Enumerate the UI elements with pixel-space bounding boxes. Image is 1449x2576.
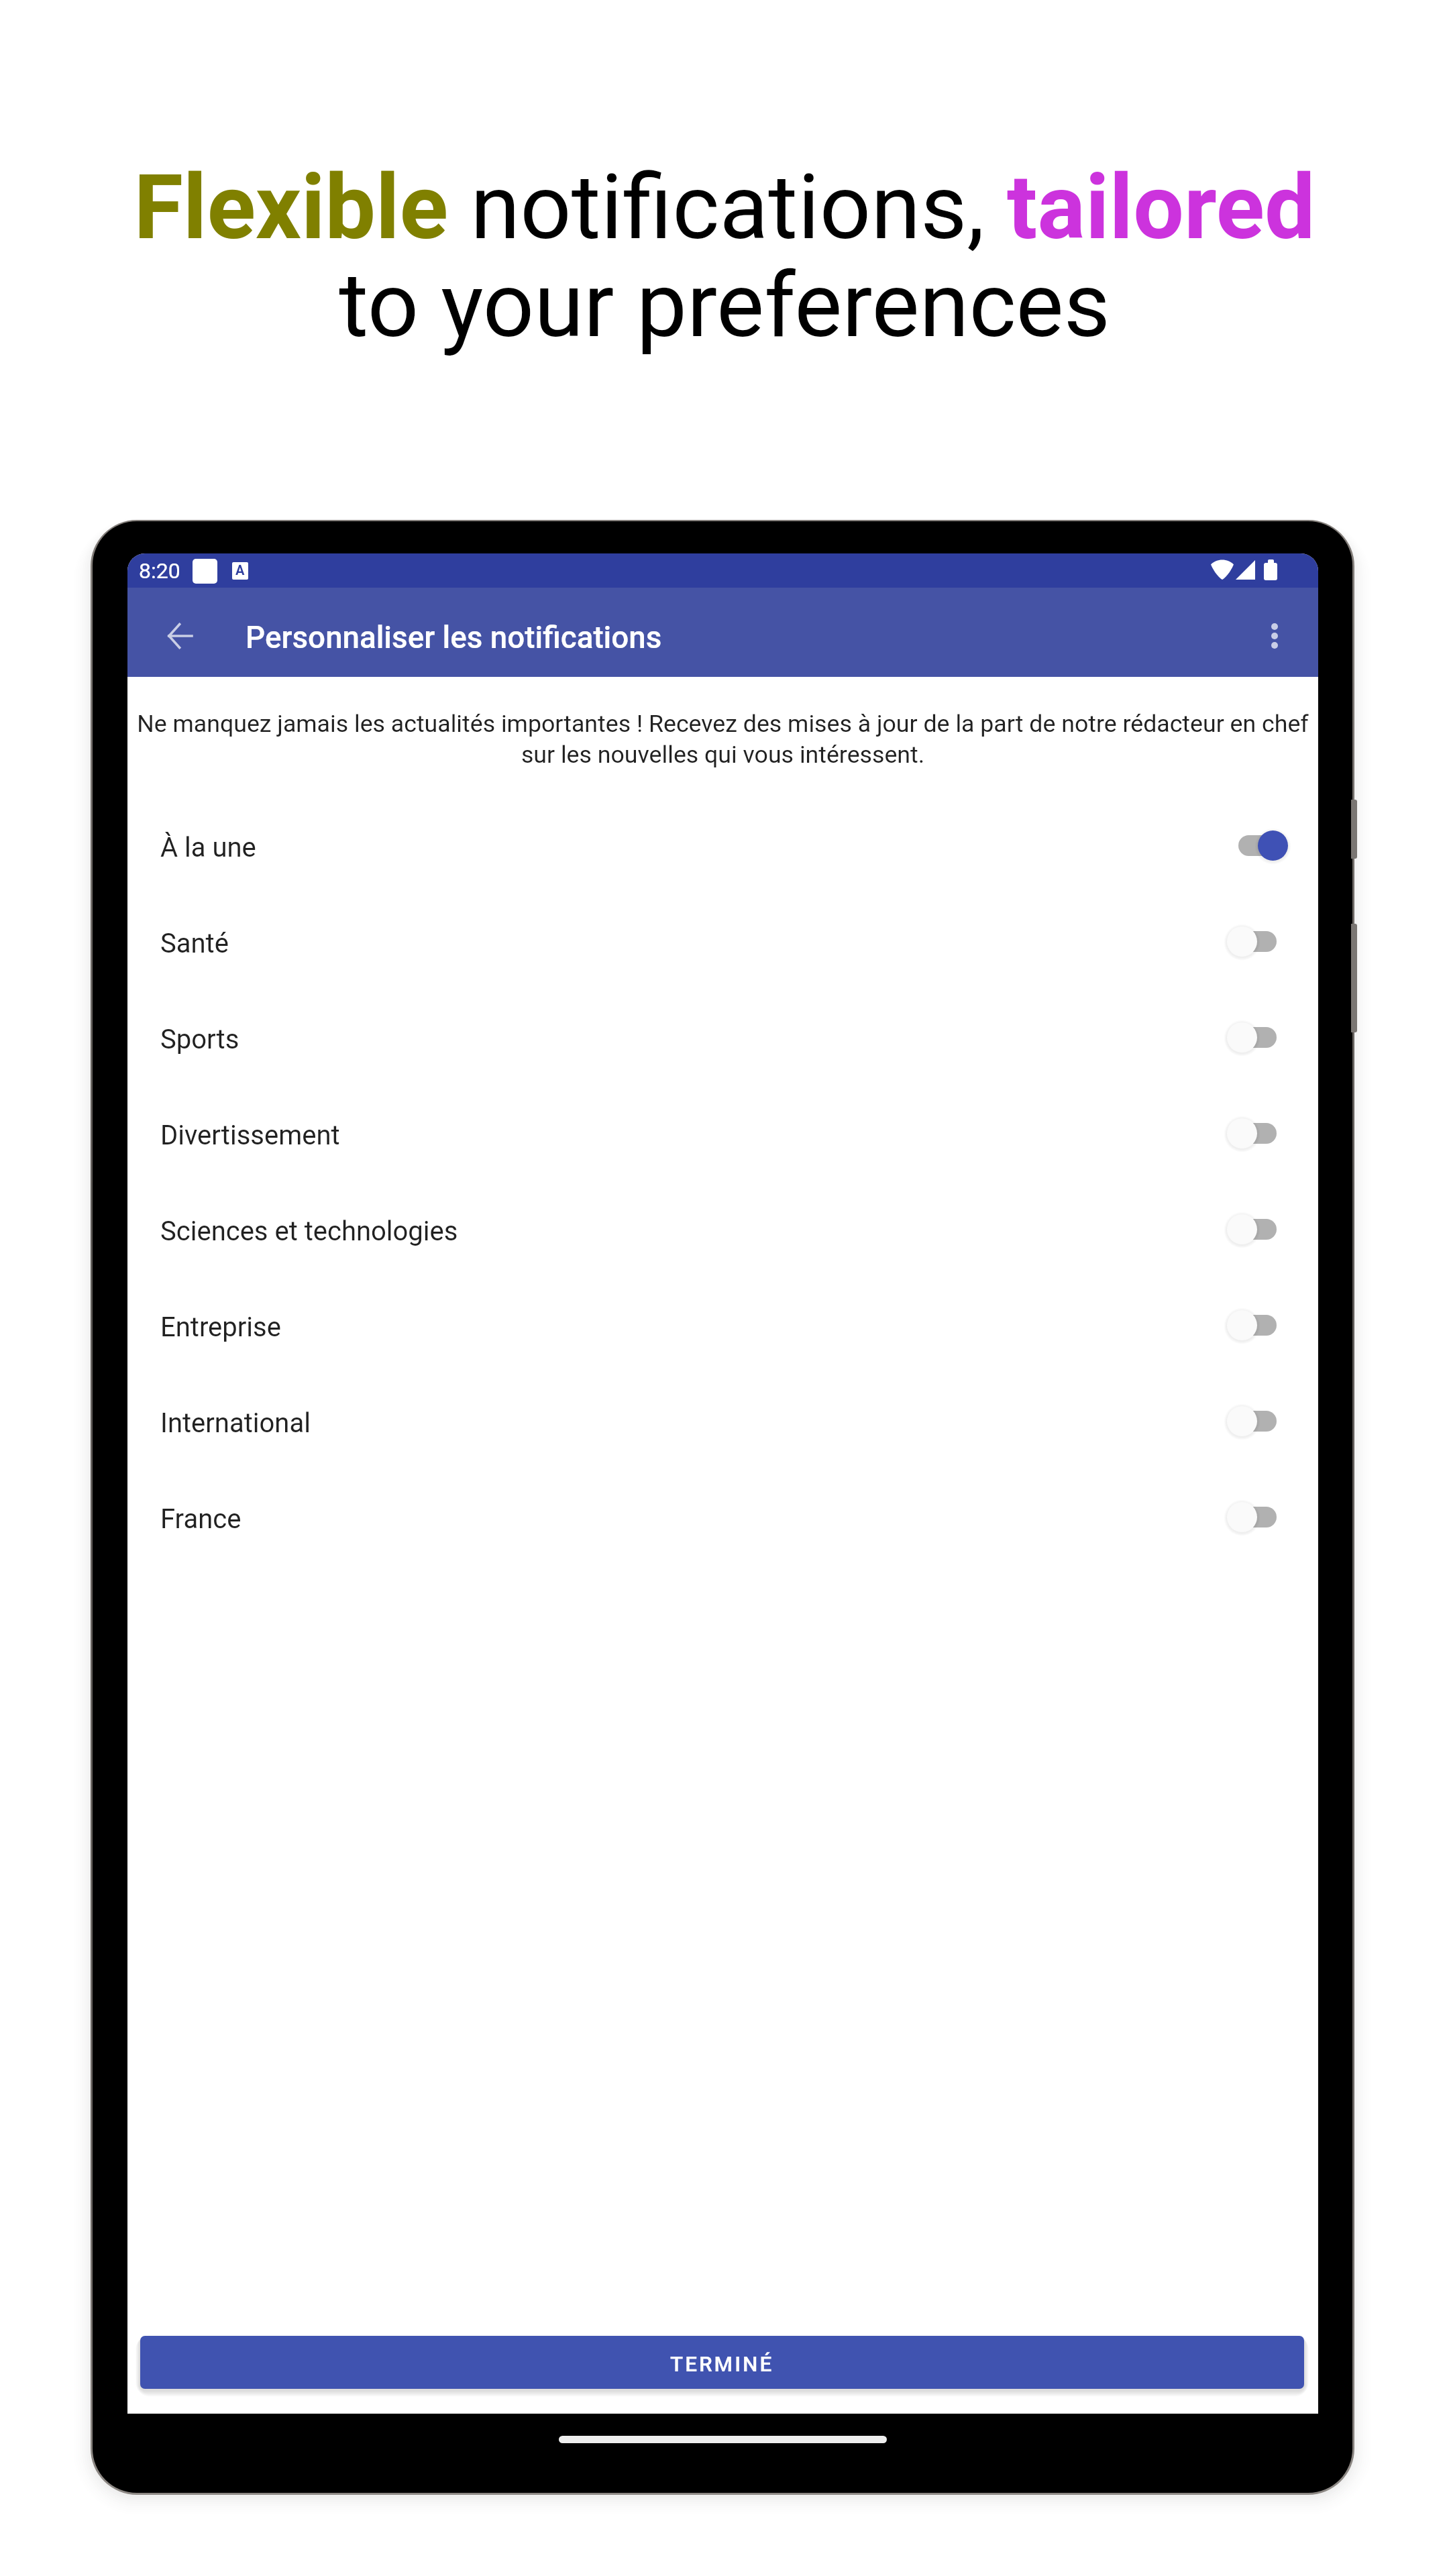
staticText: France xyxy=(160,1503,241,1535)
staticText: Personnaliser les notifications xyxy=(246,620,662,656)
staticText: A xyxy=(235,562,245,578)
staticText: TERMINÉ xyxy=(670,2352,774,2377)
button[interactable]: Entreprise xyxy=(127,1279,1318,1375)
staticText: 8:20 xyxy=(139,558,180,584)
staticText: Flexible notifications, tailored to your… xyxy=(0,155,1449,358)
button[interactable]: Back xyxy=(142,598,217,674)
staticText: Divertissement xyxy=(160,1120,340,1151)
staticText: International xyxy=(160,1407,311,1439)
button[interactable]: À la une xyxy=(127,799,1318,895)
button[interactable]: France xyxy=(127,1470,1318,1566)
button[interactable]: Sciences et technologies xyxy=(127,1183,1318,1279)
button[interactable]: Sports xyxy=(127,991,1318,1087)
button[interactable]: International xyxy=(127,1375,1318,1470)
staticText: Sports xyxy=(160,1024,239,1055)
staticText: Sciences et technologies xyxy=(160,1216,458,1247)
button[interactable]: More options xyxy=(1237,598,1312,674)
staticText: Santé xyxy=(160,928,229,959)
staticText: Ne manquez jamais les actualités importa… xyxy=(127,710,1318,769)
button[interactable]: Divertissement xyxy=(127,1087,1318,1183)
button[interactable]: Santé xyxy=(127,895,1318,991)
button[interactable]: TERMINÉ xyxy=(140,2336,1304,2389)
staticText: Entreprise xyxy=(160,1311,281,1343)
staticText: À la une xyxy=(160,832,256,863)
